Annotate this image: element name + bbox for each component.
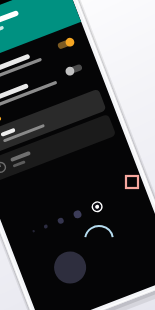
button[interactable]: Auto Cursor app showcase: [0, 0, 155, 310]
